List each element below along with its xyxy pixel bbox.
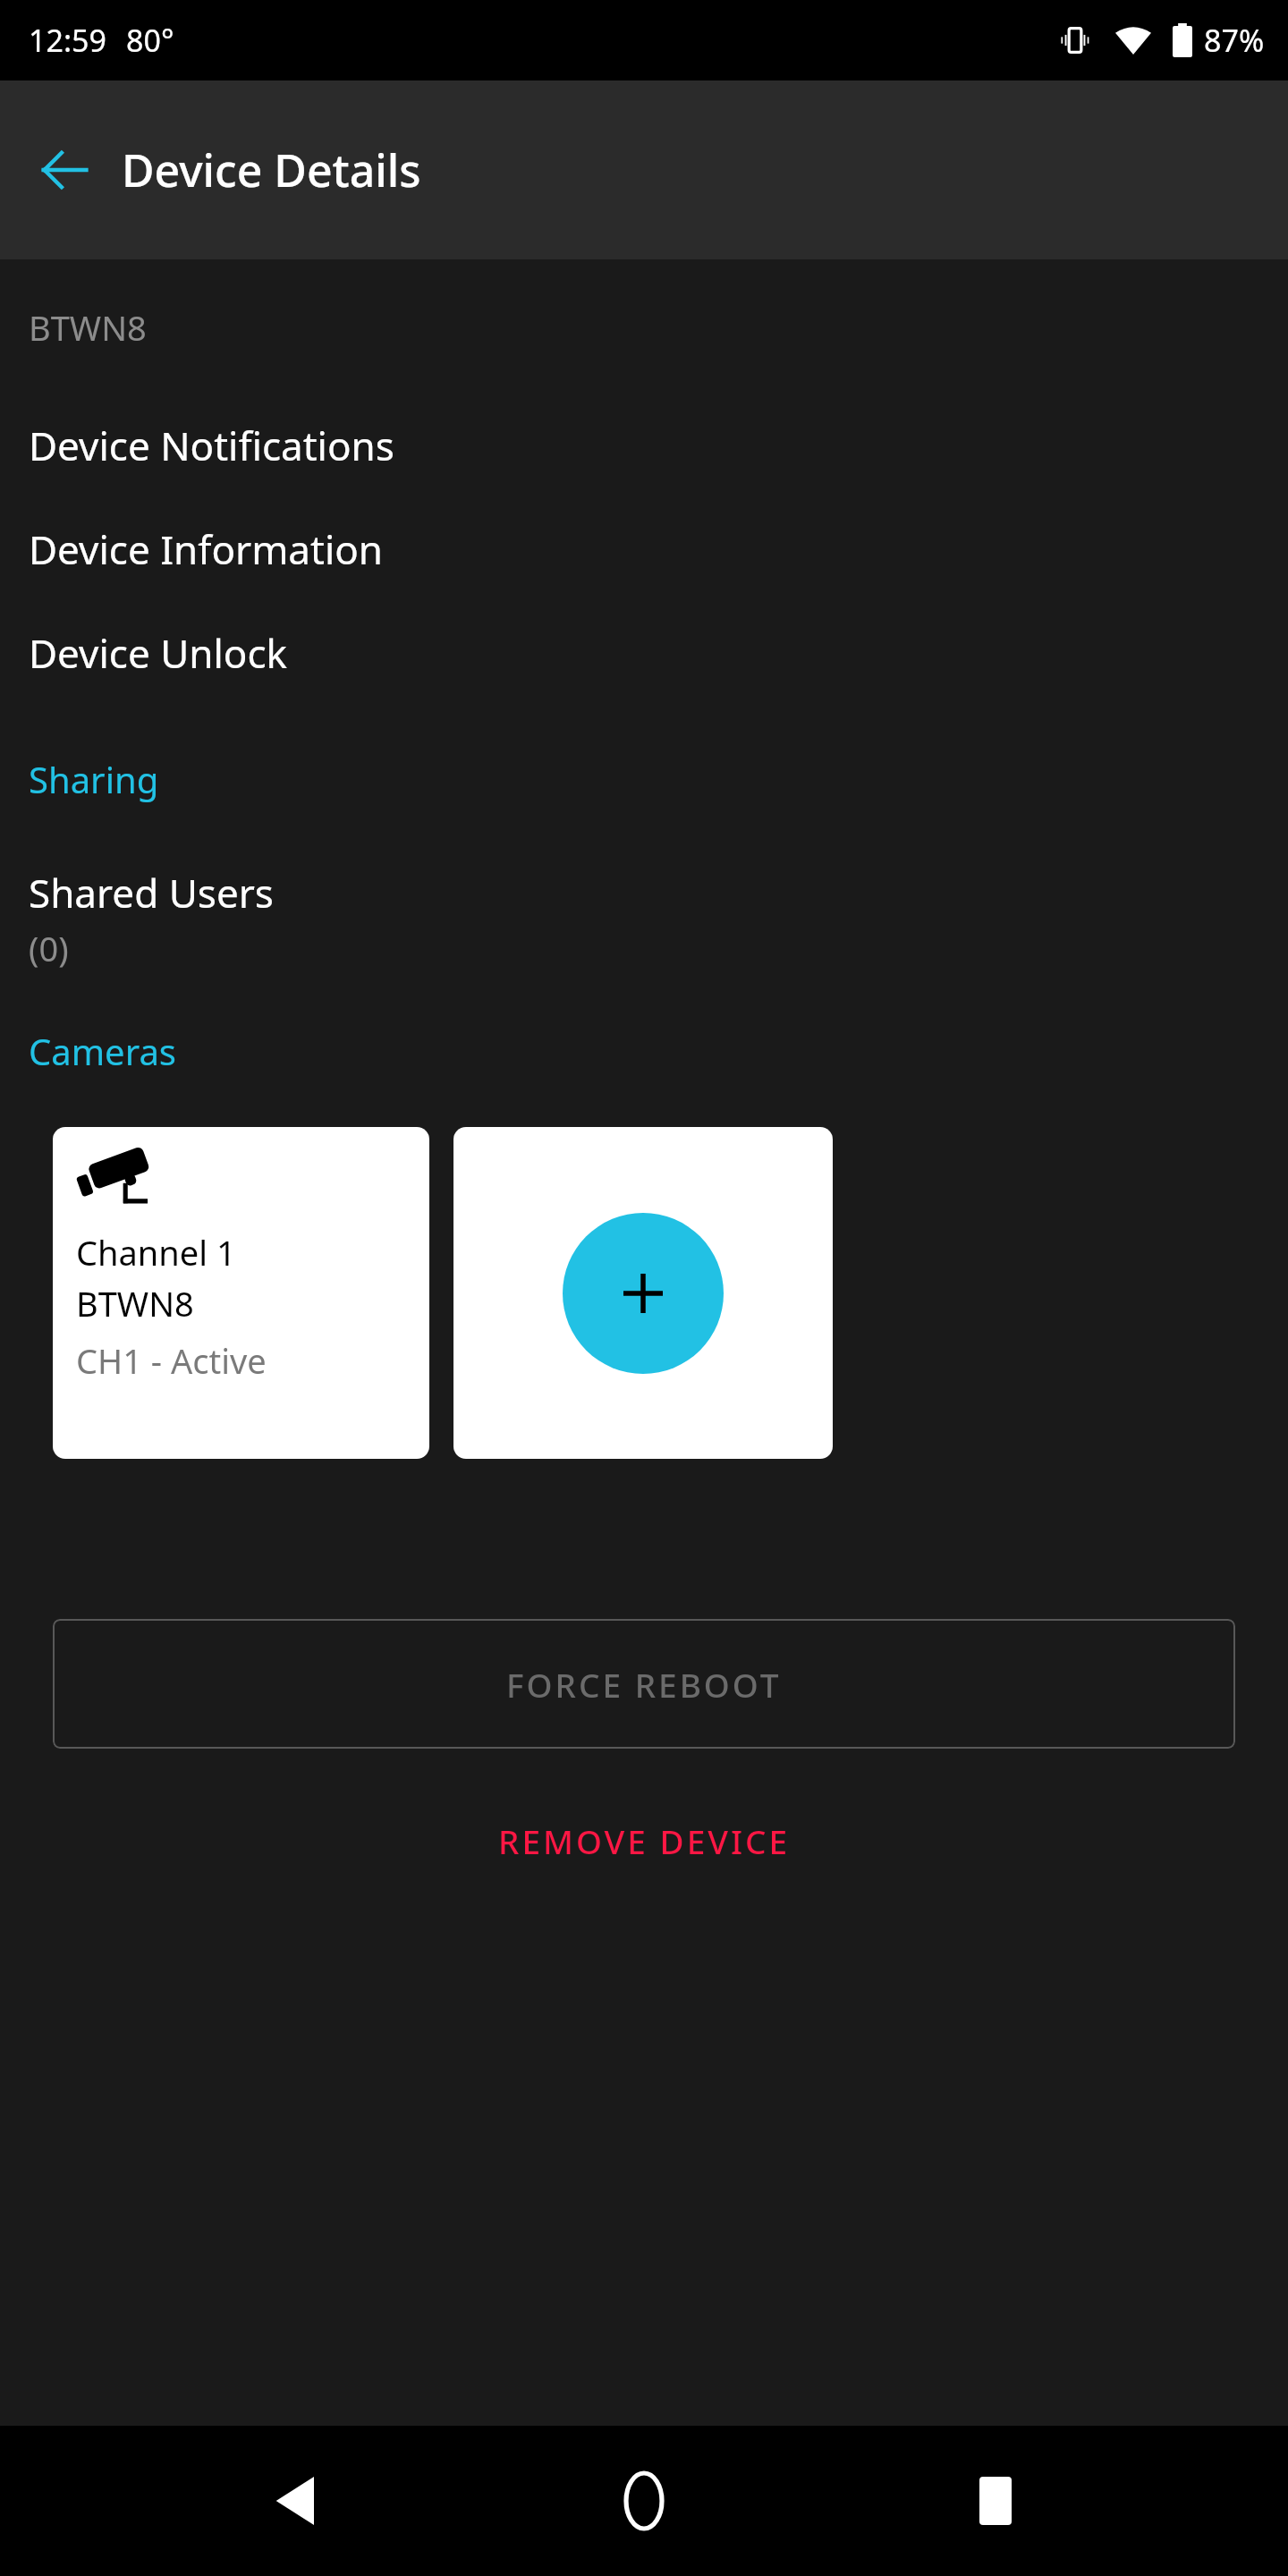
- button[interactable]: Device Notifications: [0, 419, 1288, 472]
- button[interactable]: Device Unlock: [0, 626, 1288, 680]
- button[interactable]: Channel 1: [53, 1127, 429, 1459]
- staticText: REMOVE DEVICE: [498, 1818, 791, 1863]
- staticText: Cameras: [29, 1027, 176, 1075]
- staticText: BTWN8: [29, 304, 147, 351]
- button[interactable]: FORCE REBOOT: [53, 1619, 1235, 1749]
- staticText: 80°: [126, 20, 174, 61]
- staticText: Device Details: [122, 140, 421, 200]
- button[interactable]: Device Information: [0, 522, 1288, 576]
- staticText: 87%: [1204, 20, 1265, 61]
- button[interactable]: REMOVE DEVICE: [0, 1792, 1288, 1890]
- button[interactable]: Back: [16, 122, 113, 218]
- button[interactable]: Home: [586, 2443, 702, 2559]
- staticText: Shared Users: [29, 866, 274, 919]
- button[interactable]: Back: [235, 2443, 352, 2559]
- button[interactable]: Shared Users: [0, 866, 1288, 971]
- staticText: Device Information: [29, 522, 384, 576]
- staticText: Channel 1: [76, 1229, 236, 1275]
- staticText: BTWN8: [76, 1280, 194, 1326]
- staticText: FORCE REBOOT: [506, 1662, 782, 1707]
- staticText: Device Unlock: [29, 626, 288, 680]
- staticText: (0): [29, 925, 69, 971]
- staticText: 12:59: [29, 20, 106, 61]
- staticText: CH1 - Active: [76, 1337, 267, 1384]
- staticText: Sharing: [29, 755, 159, 803]
- staticText: Device Notifications: [29, 419, 394, 472]
- button[interactable]: Add camera: [453, 1127, 833, 1459]
- button[interactable]: Recents: [937, 2443, 1054, 2559]
